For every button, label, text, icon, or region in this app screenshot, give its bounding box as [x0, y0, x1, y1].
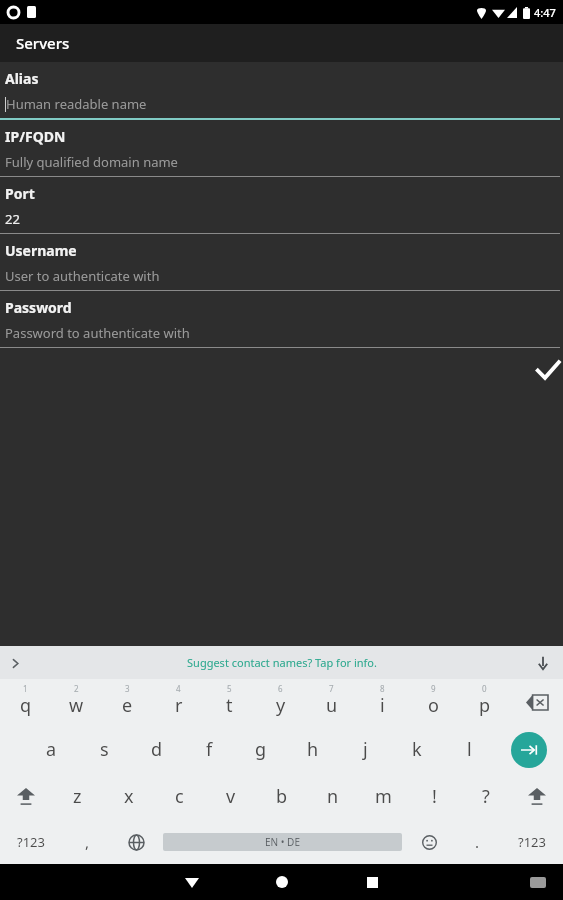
button[interactable]: Back	[175, 865, 209, 899]
staticText: ,	[85, 832, 90, 852]
staticText: ?	[482, 784, 490, 809]
button[interactable]: h	[287, 726, 339, 773]
staticText: 9	[431, 683, 436, 694]
button[interactable]: IP/FQDN	[0, 120, 563, 177]
button[interactable]: d	[131, 726, 183, 773]
button[interactable]: Emoji	[405, 820, 453, 864]
button[interactable]: 2	[51, 679, 102, 726]
staticText: b	[276, 784, 288, 809]
staticText: 0	[482, 683, 487, 694]
button[interactable]: g	[235, 726, 287, 773]
button[interactable]: Shift right	[511, 773, 563, 820]
button[interactable]: 4	[153, 679, 204, 726]
button[interactable]: Period	[453, 820, 501, 864]
button[interactable]: Next	[495, 726, 563, 773]
button[interactable]: c	[154, 773, 205, 820]
staticText: Password	[5, 298, 72, 317]
staticText: u	[326, 693, 338, 718]
button[interactable]: f	[183, 726, 235, 773]
button[interactable]: Suggest contact names? Tap for info.	[187, 655, 377, 670]
button[interactable]: Hide keyboard	[523, 867, 553, 897]
staticText: IP/FQDN	[5, 127, 66, 146]
staticText: 3	[125, 683, 130, 694]
staticText: a	[46, 737, 57, 762]
staticText: 2	[74, 683, 79, 694]
staticText: f	[206, 737, 213, 762]
staticText: ?123	[518, 833, 546, 851]
staticText: .	[475, 832, 480, 852]
button[interactable]: j	[339, 726, 391, 773]
staticText: Alias	[5, 69, 39, 88]
button[interactable]: Port	[0, 177, 563, 234]
button[interactable]: 0	[459, 679, 510, 726]
staticText: w	[69, 693, 84, 718]
staticText: d	[151, 737, 163, 762]
staticText: Username	[5, 241, 77, 260]
button[interactable]: ?123	[0, 820, 62, 864]
button[interactable]: m	[358, 773, 409, 820]
button[interactable]: a	[25, 726, 78, 773]
staticText: !	[432, 784, 437, 809]
staticText: Port	[5, 184, 35, 203]
button[interactable]: EN • DE	[163, 833, 402, 851]
staticText: y	[276, 693, 286, 718]
button[interactable]: Password	[0, 291, 563, 348]
button[interactable]: Shift	[0, 773, 52, 820]
staticText: EN • DE	[265, 835, 300, 849]
staticText: 5	[227, 683, 232, 694]
button[interactable]: Home	[265, 865, 299, 899]
staticText: v	[226, 784, 236, 809]
button[interactable]: 5	[204, 679, 255, 726]
staticText: c	[175, 784, 184, 809]
staticText: s	[100, 737, 109, 762]
button[interactable]: n	[307, 773, 358, 820]
button[interactable]: Username	[0, 234, 563, 291]
button[interactable]: v	[205, 773, 256, 820]
staticText: Servers	[16, 33, 70, 53]
staticText: t	[226, 693, 233, 718]
staticText: k	[412, 737, 422, 762]
staticText: z	[73, 784, 82, 809]
staticText: q	[20, 693, 32, 718]
staticText: x	[124, 784, 134, 809]
button[interactable]: Voice input	[531, 651, 555, 675]
staticText: l	[467, 737, 472, 762]
staticText: p	[479, 693, 491, 718]
button[interactable]: 9	[408, 679, 459, 726]
staticText: m	[375, 784, 392, 809]
button[interactable]: k	[391, 726, 443, 773]
staticText: r	[175, 693, 183, 718]
button[interactable]: z	[52, 773, 103, 820]
button[interactable]: Expand suggestions	[2, 650, 28, 676]
button[interactable]: Save	[0, 348, 563, 392]
staticText: Fully qualified domain name	[5, 153, 178, 171]
button[interactable]: 6	[255, 679, 306, 726]
staticText: 8	[380, 683, 385, 694]
button[interactable]: b	[256, 773, 307, 820]
button[interactable]: 7	[306, 679, 357, 726]
button[interactable]: Backspace	[510, 679, 563, 726]
button[interactable]: Change language	[112, 820, 160, 864]
button[interactable]: 1	[0, 679, 51, 726]
staticText: e	[122, 693, 133, 718]
staticText: Human readable name	[6, 95, 147, 113]
staticText: 4:47	[534, 5, 556, 20]
staticText: 22	[5, 210, 20, 228]
button[interactable]: s	[78, 726, 131, 773]
button[interactable]: Comma	[62, 820, 112, 864]
button[interactable]: Recents	[355, 865, 389, 899]
staticText: 6	[278, 683, 283, 694]
button[interactable]: 3	[102, 679, 153, 726]
button[interactable]: l	[443, 726, 495, 773]
button[interactable]: ?	[460, 773, 511, 820]
button[interactable]: ?123	[501, 820, 563, 864]
button[interactable]: !	[409, 773, 460, 820]
staticText: 4	[176, 683, 181, 694]
staticText: o	[428, 693, 439, 718]
staticText: Password to authenticate with	[5, 324, 190, 342]
staticText: User to authenticate with	[5, 267, 160, 285]
button[interactable]: 8	[357, 679, 408, 726]
staticText: 7	[329, 683, 334, 694]
button[interactable]: Alias	[0, 62, 563, 120]
button[interactable]: x	[103, 773, 154, 820]
